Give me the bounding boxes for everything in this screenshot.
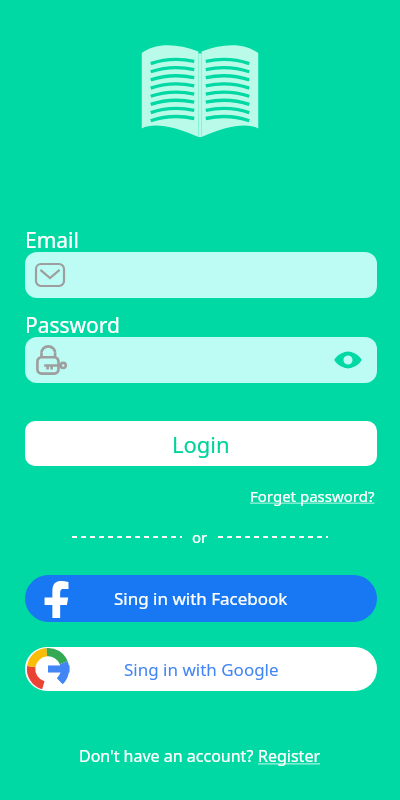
button[interactable]: Show password: [25, 337, 377, 383]
staticText: Forget password?: [250, 486, 375, 506]
button[interactable]: Login: [25, 421, 377, 466]
staticText: or: [192, 527, 208, 547]
button[interactable]: Sing in with Facebook: [25, 575, 377, 622]
staticText: Don't have an account?: [79, 745, 258, 767]
staticText: Password: [25, 311, 120, 340]
other: Google: [24, 645, 72, 693]
button[interactable]: Forget password?: [248, 484, 377, 508]
button[interactable]: Sing in with Google: [25, 647, 377, 691]
staticText: Sing in with Facebook: [114, 587, 288, 610]
staticText: Email: [25, 226, 79, 255]
button[interactable]: [25, 252, 377, 298]
staticText: Login: [172, 429, 230, 459]
staticText: Sing in with Google: [124, 658, 279, 681]
button[interactable]: Show password: [333, 348, 363, 372]
staticText: Register: [258, 745, 321, 767]
button[interactable]: Register: [258, 745, 321, 767]
